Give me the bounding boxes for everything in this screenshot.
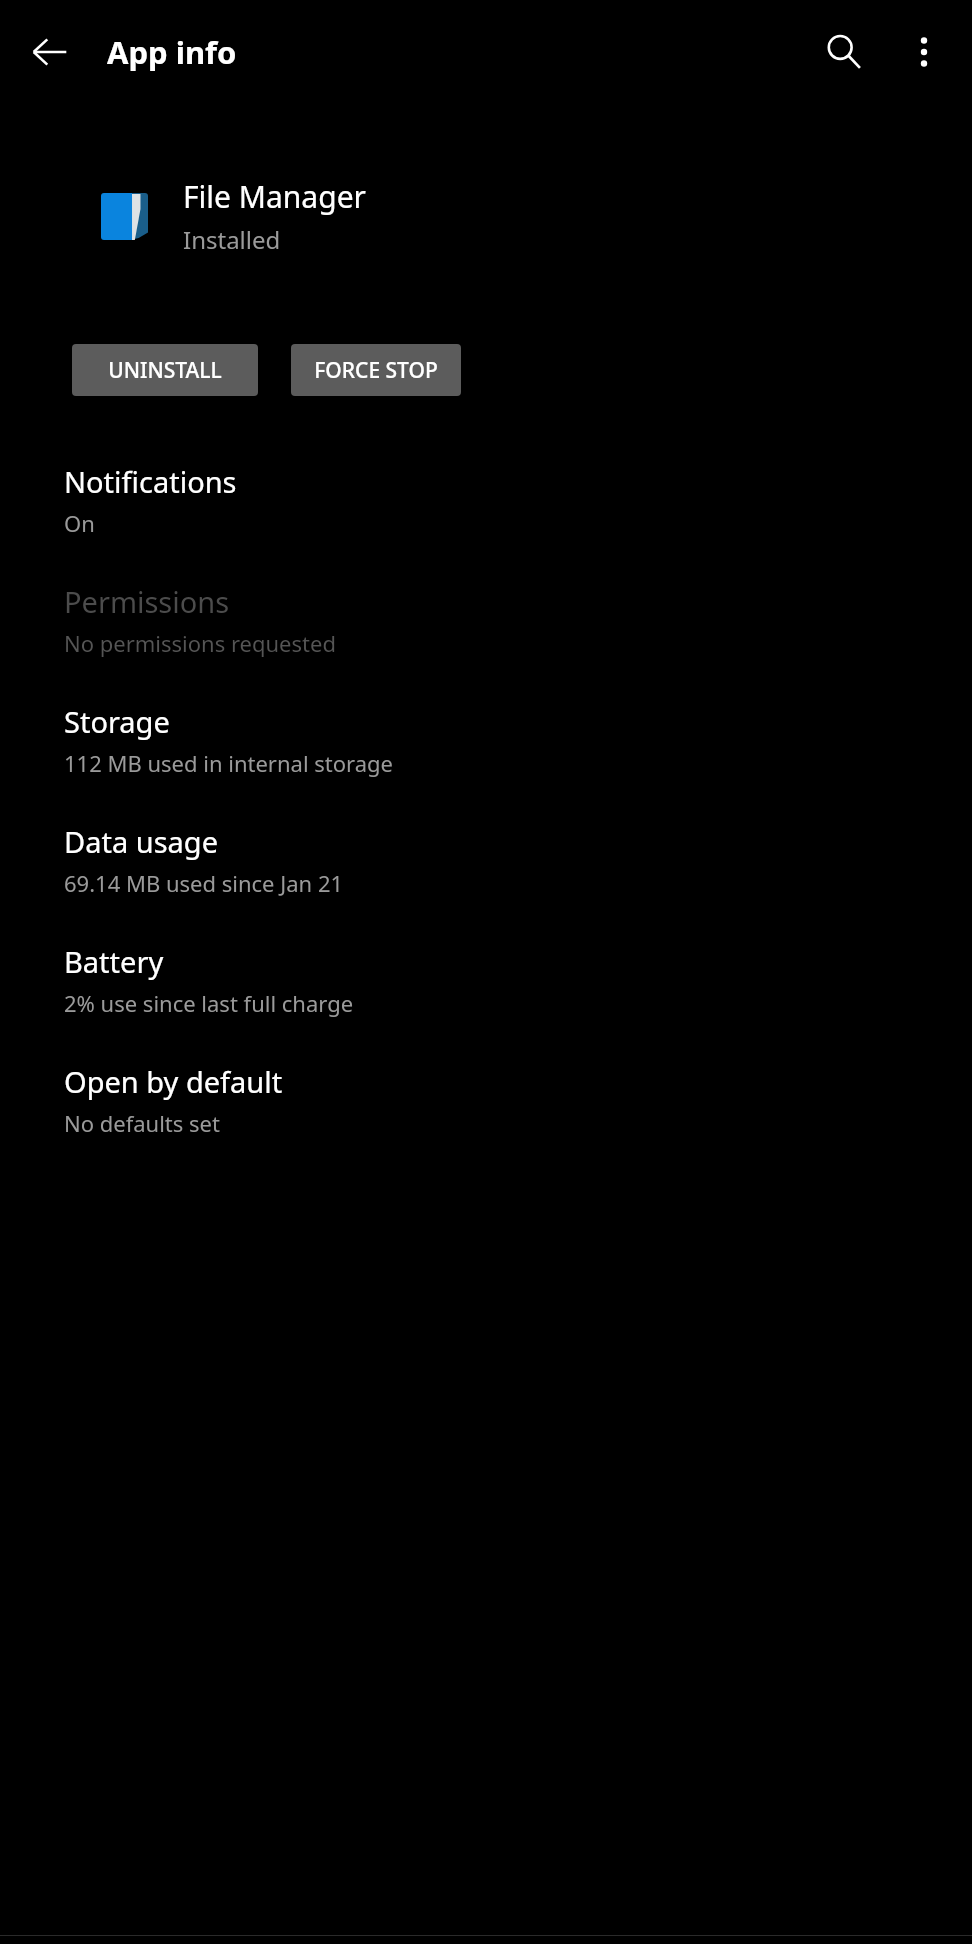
staticText: Storage [64, 702, 170, 741]
button[interactable]: UNINSTALL [72, 344, 258, 396]
button[interactable]: Open by default [0, 1040, 972, 1160]
staticText: File Manager [183, 176, 366, 217]
staticText: FORCE STOP [314, 356, 438, 385]
button[interactable]: Data usage [0, 800, 972, 920]
staticText: Battery [64, 942, 164, 981]
staticText: Permissions [64, 582, 230, 621]
button[interactable]: FORCE STOP [291, 344, 461, 396]
staticText: On [64, 508, 95, 538]
staticText: 69.14 MB used since Jan 21 [64, 868, 344, 898]
button[interactable]: Back [14, 16, 86, 88]
button[interactable]: More options [886, 14, 962, 90]
button[interactable]: Battery [0, 920, 972, 1040]
button[interactable]: Storage [0, 680, 972, 800]
staticText: Open by default [64, 1062, 283, 1101]
button[interactable]: Notifications [0, 440, 972, 560]
staticText: Installed [183, 223, 281, 256]
staticText: UNINSTALL [108, 356, 222, 385]
staticText: App info [107, 31, 237, 73]
staticText: No defaults set [64, 1108, 220, 1138]
staticText: Data usage [64, 822, 218, 861]
staticText: 2% use since last full charge [64, 988, 354, 1018]
staticText: No permissions requested [64, 628, 336, 658]
button[interactable]: Permissions [0, 560, 972, 680]
button[interactable]: Search [806, 14, 882, 90]
staticText: 112 MB used in internal storage [64, 748, 393, 778]
staticText: Notifications [64, 462, 237, 501]
